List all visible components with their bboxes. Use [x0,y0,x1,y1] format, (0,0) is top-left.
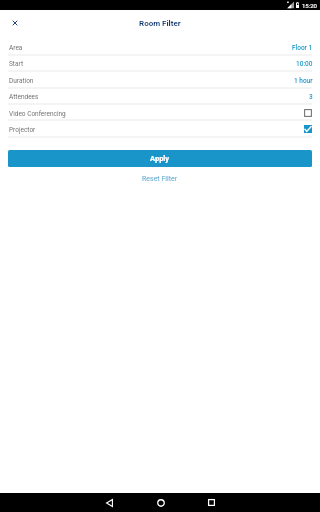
button[interactable]: Close [6,14,23,31]
staticText: 3 [309,93,313,101]
button[interactable]: Video Conferencing [0,105,320,121]
button[interactable]: Back [100,493,119,512]
staticText: 10:00 [296,60,313,68]
button[interactable]: Start [0,55,320,71]
button[interactable]: Home [151,493,170,512]
button[interactable]: Projector [0,121,320,137]
button[interactable]: Attendees [0,88,320,104]
button[interactable]: Area [0,39,320,55]
button[interactable]: Apply [8,150,312,167]
staticText: Apply [150,154,170,163]
button[interactable]: Recent apps [201,493,220,512]
staticText: Area [9,44,23,52]
staticText: Attendees [9,93,39,101]
staticText: 15:20 [302,2,317,9]
staticText: Video Conferencing [9,110,66,118]
staticText: Start [9,60,24,68]
staticText: Projector [9,126,36,134]
staticText: Duration [9,77,34,85]
staticText: Floor 1 [292,44,313,52]
staticText: Room Filter [139,19,181,28]
staticText: 1 hour [294,77,313,85]
button[interactable]: Duration [0,72,320,88]
staticText: Reset Filter [142,175,178,183]
button[interactable]: Reset Filter [132,173,188,185]
